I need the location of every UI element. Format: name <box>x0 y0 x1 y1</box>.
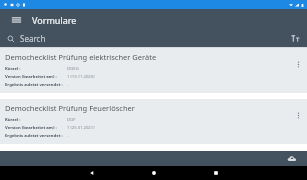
button[interactable]: Open navigation menu <box>0 9 32 30</box>
button[interactable]: Back <box>61 166 123 180</box>
staticText: Ergebnis zuletzt versendet : <box>5 82 63 88</box>
staticText: - <box>67 82 69 88</box>
button[interactable]: Sort <box>283 30 307 47</box>
button[interactable]: More options <box>291 103 305 127</box>
button[interactable]: Recent apps <box>185 166 247 180</box>
button[interactable]: Demochecklist Prüfung Feuerlöscher <box>0 99 307 144</box>
staticText: Demochecklist Prüfung Feuerlöscher <box>5 103 135 113</box>
button[interactable]: More options <box>291 52 305 76</box>
staticText: DOEG <box>67 66 79 72</box>
staticText: 1 (19.11.2020) <box>67 74 95 80</box>
staticText: Version (bearbeitet am) : <box>5 74 57 80</box>
staticText: 1 (25.01.2021) <box>67 125 95 131</box>
staticText: Demochecklist Prüfung elektrischer Gerät… <box>5 52 157 62</box>
staticText: Version (bearbeitet am) : <box>5 125 57 131</box>
button[interactable]: Demochecklist Prüfung elektrischer Gerät… <box>0 48 307 93</box>
staticText: Vormulare <box>32 14 77 26</box>
staticText: Ergebnis zuletzt versendet : <box>5 133 63 139</box>
button[interactable]: Search <box>0 30 307 47</box>
staticText: Kürzel : <box>5 66 21 72</box>
button[interactable]: Sync to cloud <box>281 151 303 166</box>
staticText: - <box>67 133 69 139</box>
staticText: DOF <box>67 117 76 123</box>
button[interactable]: Home <box>123 166 185 180</box>
staticText: Kürzel : <box>5 117 21 123</box>
staticText: Search <box>20 33 46 44</box>
